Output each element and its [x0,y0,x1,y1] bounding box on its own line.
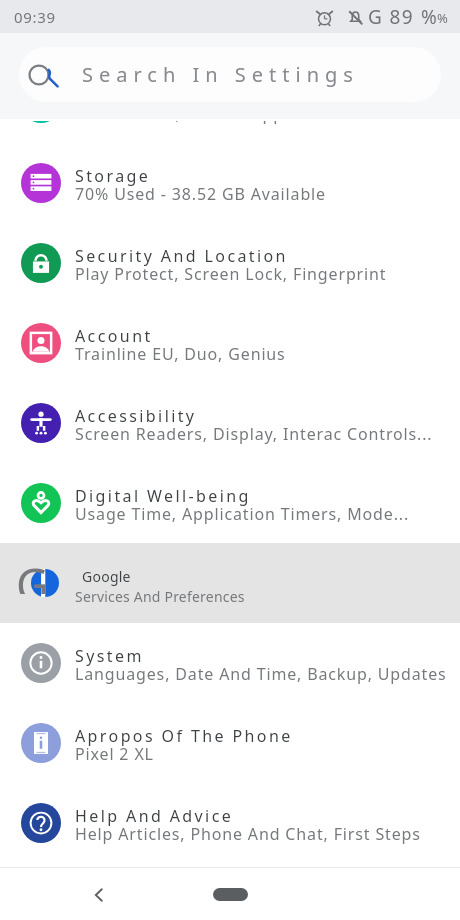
button[interactable]: Back [77,873,121,917]
staticText: Permissions, Default Apps [75,121,293,125]
staticText: Play Protect, Screen Lock, Fingerprint [75,263,387,285]
staticText: G 89 [368,4,421,30]
staticText: Services And Preferences [75,587,245,606]
button[interactable]: Security And Location [0,223,460,303]
button[interactable]: Account [0,303,460,383]
staticText: Help Articles, Phone And Chat, First Ste… [75,823,421,845]
staticText: 09:39 [14,7,56,27]
staticText: Trainline EU, Duo, Genius [75,343,286,365]
button[interactable]: Help And Advice [0,783,460,863]
staticText: G [16,554,49,594]
staticText: Apropos Of The Phone [75,725,293,747]
staticText: Help And Advice [75,805,234,827]
staticText: Usage Time, Application Timers, Mode... [75,503,410,525]
staticText: Pixel 2 XL [75,743,154,765]
button[interactable]: Digital Well-being [0,463,460,543]
staticText: System [75,645,144,667]
button[interactable]: Apps And Notifications [0,121,460,143]
staticText: Storage [75,165,151,187]
button[interactable]: System [0,623,460,703]
staticText: % [437,9,448,27]
staticText: Security And Location [75,245,288,267]
staticText: Account [75,325,153,347]
button[interactable]: Storage [0,143,460,223]
button[interactable]: Search In Settings [19,47,441,102]
staticText: Google [82,567,131,586]
staticText: Digital Well-being [75,485,251,507]
button[interactable]: Apropos Of The Phone [0,703,460,783]
staticText: Accessibility [75,405,197,427]
staticText: % [421,4,437,30]
button[interactable]: G [0,543,460,623]
staticText: Search In Settings [82,61,359,88]
button[interactable]: Accessibility [0,383,460,463]
staticText: 70% Used - 38.52 GB Available [75,183,326,205]
staticText: Languages, Date And Time, Backup, Update… [75,663,447,685]
button[interactable]: Home [213,888,248,901]
staticText: Screen Readers, Display, Interac Control… [75,423,433,445]
